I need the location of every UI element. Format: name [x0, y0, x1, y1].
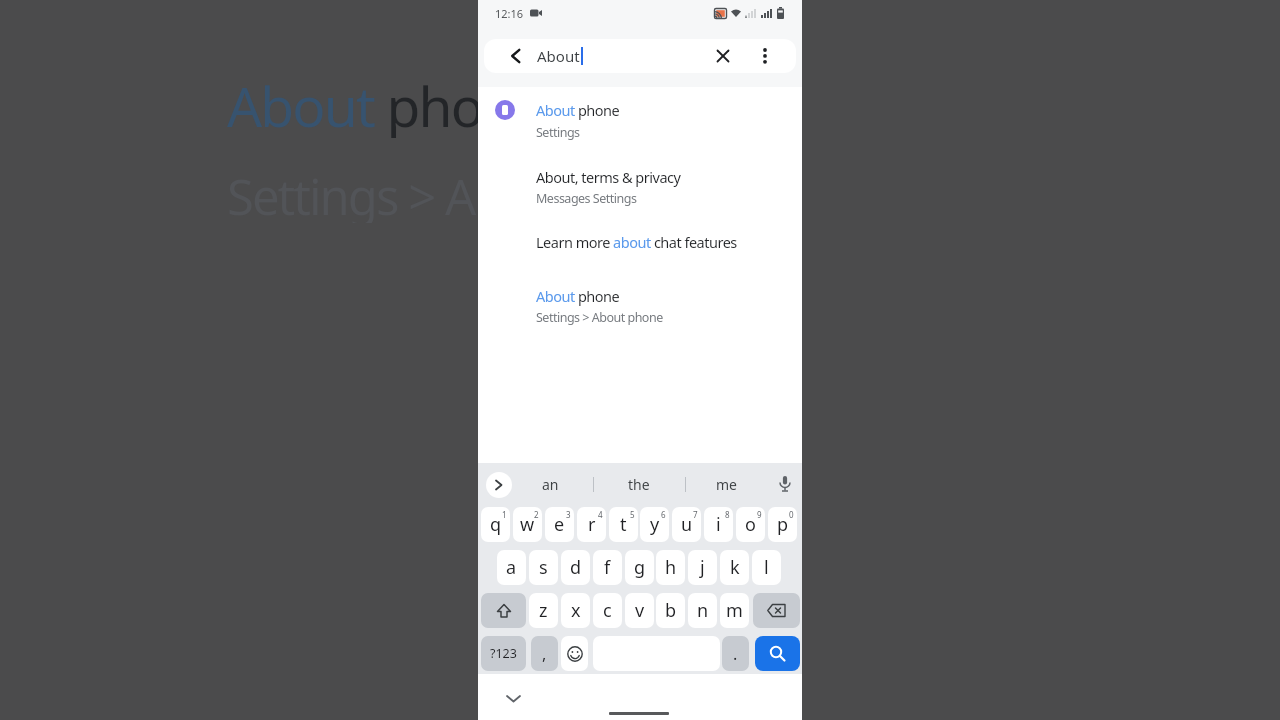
button[interactable]: s [529, 550, 558, 585]
staticText: b [665, 598, 677, 623]
button[interactable]: w [513, 507, 542, 542]
staticText: x [571, 598, 581, 623]
staticText: 8 [725, 509, 730, 520]
button[interactable]: . [722, 636, 749, 671]
button[interactable]: p [768, 507, 797, 542]
staticText: o [745, 512, 756, 537]
staticText: f [604, 555, 611, 580]
staticText: j [700, 555, 705, 580]
staticText: w [520, 512, 535, 537]
staticText: v [635, 598, 645, 623]
button[interactable]: r [577, 507, 606, 542]
button[interactable]: z [529, 593, 558, 628]
staticText: y [650, 512, 660, 537]
button[interactable]: About phone [478, 280, 802, 334]
staticText: l [764, 555, 769, 580]
staticText: g [634, 555, 646, 580]
button[interactable]: About, terms & privacy [478, 160, 802, 214]
button[interactable]: g [625, 550, 654, 585]
button[interactable]: q [481, 507, 510, 542]
button[interactable]: a [497, 550, 526, 585]
staticText: the [628, 475, 650, 494]
staticText: z [539, 598, 548, 623]
button[interactable]: k [720, 550, 749, 585]
button[interactable]: b [656, 593, 685, 628]
staticText: q [490, 512, 502, 537]
staticText: i [716, 512, 721, 537]
staticText: u [681, 512, 693, 537]
staticText: c [603, 598, 612, 623]
button[interactable]: m [720, 593, 749, 628]
button[interactable]: About [484, 39, 796, 73]
staticText: 7 [693, 509, 698, 520]
staticText: me [716, 475, 737, 494]
button[interactable]: the [595, 463, 683, 506]
button[interactable]: n [688, 593, 717, 628]
button[interactable]: d [561, 550, 590, 585]
staticText: About [537, 46, 580, 66]
staticText: 5 [630, 509, 635, 520]
button[interactable]: o [736, 507, 765, 542]
staticText: 2 [534, 509, 539, 520]
staticText: Settings > Al [227, 163, 485, 223]
button[interactable]: i [704, 507, 733, 542]
staticText: d [570, 555, 582, 580]
staticText: k [730, 555, 740, 580]
button[interactable]: y [640, 507, 669, 542]
button[interactable]: , [531, 636, 558, 671]
staticText: About pho [227, 68, 483, 138]
staticText: 9 [757, 509, 762, 520]
button[interactable]: an [522, 463, 578, 506]
button[interactable] [755, 636, 800, 671]
staticText: 3 [566, 509, 571, 520]
staticText: r [588, 512, 596, 537]
staticText: Messages Settings [536, 190, 637, 207]
staticText: h [665, 555, 677, 580]
button[interactable]: e [545, 507, 574, 542]
staticText: Learn more about chat features [536, 232, 737, 252]
staticText: n [697, 598, 709, 623]
button[interactable]: ?123 [481, 636, 526, 671]
staticText: . [733, 643, 738, 665]
button[interactable]: About phone [478, 94, 802, 148]
staticText: ?123 [490, 645, 517, 662]
staticText: m [726, 598, 743, 623]
staticText: Settings > About phone [536, 309, 663, 326]
staticText: p [777, 512, 789, 537]
staticText: , [542, 643, 547, 665]
staticText: About, terms & privacy [536, 167, 681, 187]
button[interactable]: me [698, 463, 754, 506]
button[interactable]: h [656, 550, 685, 585]
button[interactable] [561, 636, 588, 671]
staticText: 12:16 [495, 6, 524, 21]
button[interactable]: f [593, 550, 622, 585]
staticText: About phone [536, 286, 620, 306]
staticText: 4 [598, 509, 603, 520]
staticText: Settings [536, 124, 580, 141]
staticText: 1 [502, 509, 507, 520]
staticText: e [554, 512, 565, 537]
button[interactable]: u [672, 507, 701, 542]
staticText: a [506, 555, 517, 580]
button[interactable]: l [752, 550, 781, 585]
button[interactable]: j [688, 550, 717, 585]
button[interactable]: v [625, 593, 654, 628]
button[interactable] [486, 472, 512, 498]
staticText: s [539, 555, 548, 580]
button[interactable]: t [609, 507, 638, 542]
staticText: 0 [789, 509, 794, 520]
button[interactable] [481, 593, 526, 628]
button[interactable]: x [561, 593, 590, 628]
button[interactable] [753, 593, 800, 628]
staticText: an [542, 475, 559, 494]
staticText: t [620, 512, 627, 537]
button[interactable]: Learn more about chat features [478, 226, 802, 258]
button[interactable]: c [593, 593, 622, 628]
staticText: About phone [536, 100, 620, 120]
staticText: 6 [661, 509, 666, 520]
